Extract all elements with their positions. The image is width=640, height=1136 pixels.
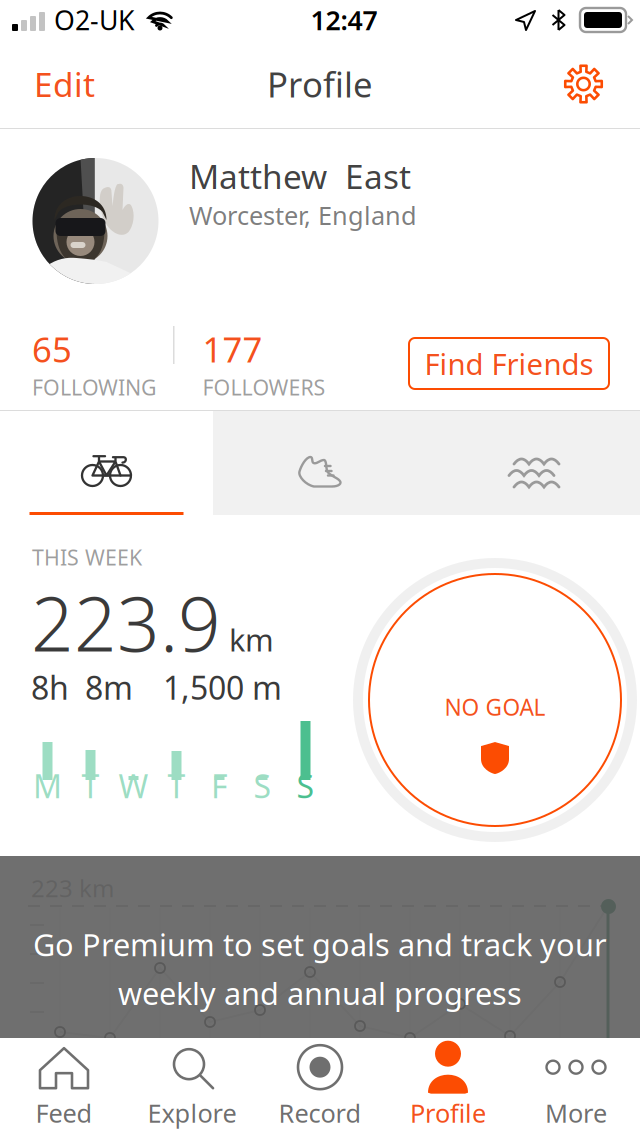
staticText: Go Premium to set goals and track your (33, 924, 607, 965)
staticText: Find Friends (424, 344, 593, 383)
staticText: Profile (410, 1096, 486, 1130)
button[interactable]: Running (213, 411, 426, 515)
staticText: Record (278, 1096, 361, 1130)
button[interactable]: Find Friends (409, 338, 609, 389)
button[interactable]: 223 km (0, 856, 640, 1038)
staticText: W (118, 764, 148, 807)
staticText: 12:47 (310, 2, 377, 38)
button[interactable]: Edit (18, 40, 111, 128)
staticText: 177 (202, 326, 262, 372)
button[interactable]: 65 (32, 326, 173, 401)
button[interactable]: Cycling (0, 411, 213, 515)
staticText: S (296, 764, 314, 807)
button[interactable]: Feed (0, 1038, 128, 1136)
staticText: FOLLOWING (32, 373, 157, 401)
button[interactable]: More (512, 1038, 640, 1136)
staticText: 8h 8m (31, 666, 133, 708)
staticText: Matthew East (189, 154, 411, 198)
staticText: O2-UK (54, 2, 135, 38)
staticText: weekly and annual progress (118, 973, 522, 1013)
staticText: THIS WEEK (32, 543, 142, 571)
staticText: 223.9 (31, 573, 221, 672)
staticText: F (211, 764, 228, 807)
staticText: Explore (147, 1096, 236, 1130)
staticText: M (33, 764, 62, 807)
staticText: 223 km (31, 872, 114, 904)
staticText: Worcester, England (189, 198, 417, 232)
staticText: More (545, 1096, 607, 1130)
button[interactable]: Swimming (426, 411, 640, 515)
staticText: FOLLOWERS (202, 373, 325, 401)
staticText: S (253, 764, 271, 807)
staticText: 65 (32, 326, 72, 372)
button[interactable]: Settings (546, 40, 621, 128)
button[interactable]: Profile (384, 1038, 512, 1136)
staticText: Feed (35, 1096, 92, 1130)
staticText: 1,500 m (163, 666, 282, 708)
button[interactable]: Explore (128, 1038, 256, 1136)
staticText: Edit (34, 62, 95, 106)
staticText: Profile (267, 61, 373, 107)
staticText: NO GOAL (444, 692, 545, 722)
staticText: km (229, 619, 274, 660)
staticText: T (81, 764, 99, 807)
staticText: T (167, 764, 185, 807)
button[interactable]: 177 (174, 326, 325, 401)
button[interactable]: Record (256, 1038, 384, 1136)
